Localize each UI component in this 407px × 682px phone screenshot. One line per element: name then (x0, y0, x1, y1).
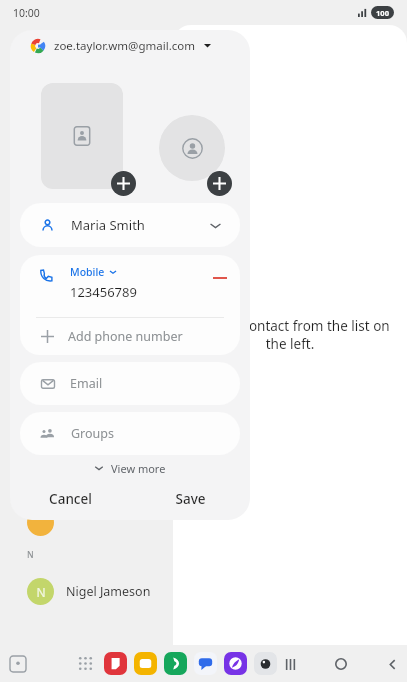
button[interactable]: Remove phone number (213, 271, 227, 285)
staticText: 100 (376, 8, 389, 18)
staticText: 123456789 (70, 283, 137, 301)
button[interactable]: Email (20, 362, 240, 405)
staticText: Save (175, 490, 206, 508)
staticText: 10:00 (13, 6, 40, 20)
staticText: Maria Smith (71, 216, 145, 234)
button[interactable]: Groups (20, 412, 240, 455)
button[interactable]: Recents panel (10, 656, 26, 672)
button[interactable]: N (0, 570, 173, 612)
button[interactable]: My Files (134, 652, 157, 675)
staticText: Add phone number (68, 328, 183, 345)
staticText: Select a contact from the list on the le… (190, 317, 390, 353)
button[interactable]: Maria Smith (20, 203, 240, 247)
staticText: Email (70, 375, 103, 392)
button[interactable]: Add photo (41, 83, 123, 189)
button[interactable]: Add phone number (20, 318, 240, 355)
button[interactable]: Back (379, 651, 405, 677)
staticText: N (36, 584, 46, 600)
button[interactable]: Save (130, 481, 250, 517)
button[interactable]: Camera (254, 652, 277, 675)
button[interactable]: Home (328, 651, 354, 677)
staticText: Groups (71, 425, 114, 442)
staticText: N (27, 549, 34, 561)
staticText: zoe.taylor.wm@gmail.com (54, 38, 195, 54)
button[interactable]: Add avatar (207, 171, 232, 196)
button[interactable]: Mobile (20, 255, 240, 317)
button[interactable] (0, 505, 173, 539)
button[interactable]: Internet (224, 652, 247, 675)
button[interactable]: Messages (194, 652, 217, 675)
button[interactable]: All apps (78, 656, 93, 671)
button[interactable]: Add photo (111, 171, 136, 196)
staticText: View more (111, 461, 166, 476)
button[interactable]: View more (10, 455, 250, 481)
button[interactable]: zoe.taylor.wm@gmail.com (10, 30, 250, 61)
button[interactable]: Recent apps (277, 651, 303, 677)
staticText: Nigel Jameson (66, 583, 151, 600)
button[interactable]: Phone (164, 652, 187, 675)
button[interactable]: Cancel (10, 481, 130, 517)
button[interactable]: Add avatar (159, 115, 225, 181)
staticText: Cancel (49, 490, 92, 508)
button[interactable]: Notes (104, 652, 127, 675)
staticText: Mobile (70, 265, 105, 279)
